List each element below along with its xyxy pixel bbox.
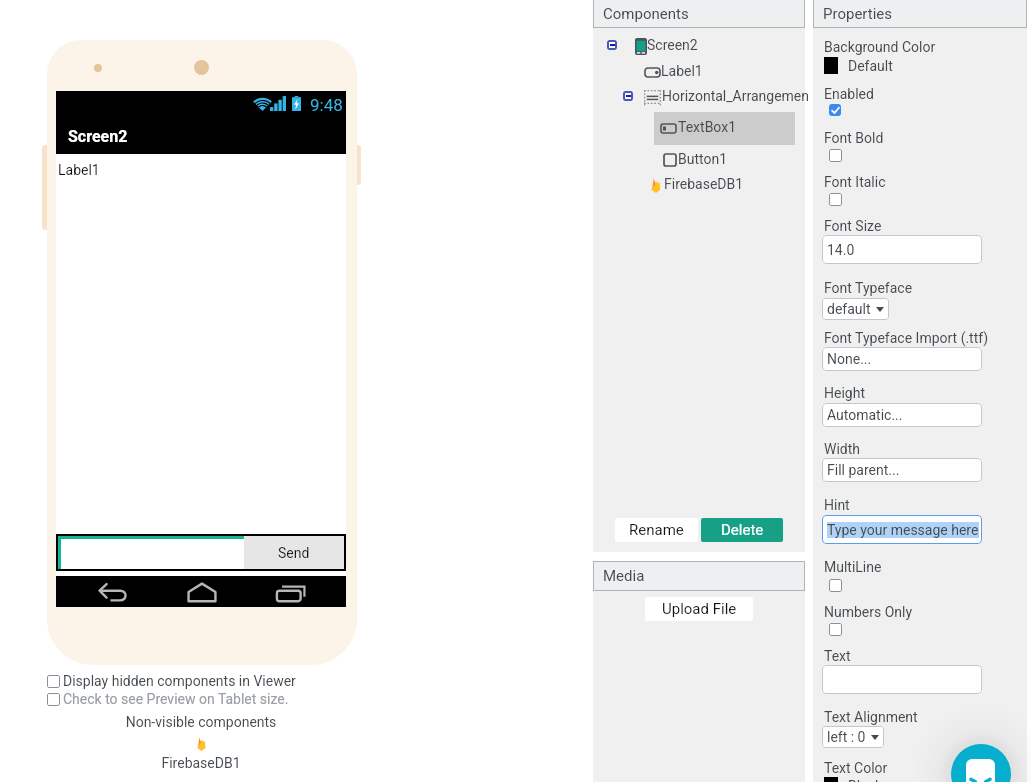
staticText: Media	[603, 567, 645, 585]
staticText: Screen2	[647, 37, 698, 53]
staticText: Screen2	[68, 127, 128, 146]
staticText: Rename	[629, 521, 684, 539]
button[interactable]: Home	[186, 581, 218, 603]
staticText: Properties	[823, 5, 893, 23]
button[interactable]: Automatic...	[822, 403, 982, 427]
staticText: 14.0	[827, 242, 855, 258]
staticText: Display hidden components in Viewer	[63, 673, 296, 689]
button[interactable]: Unchecked checkbox	[47, 675, 60, 688]
staticText: Black	[848, 778, 883, 782]
staticText: FirebaseDB1	[664, 176, 744, 192]
staticText: Font Bold	[824, 130, 884, 146]
staticText: Default	[848, 58, 893, 74]
button[interactable]: Unchecked checkbox	[829, 149, 842, 162]
staticText: Upload File	[662, 600, 737, 618]
staticText: Font Italic	[824, 174, 886, 190]
staticText: Non-visible components	[51, 714, 351, 730]
button[interactable]: Recents	[275, 581, 307, 603]
button[interactable]: Back	[97, 581, 129, 603]
button[interactable]: Delete	[701, 518, 783, 542]
button[interactable]: Unchecked checkbox	[829, 579, 842, 592]
staticText: Fill parent...	[827, 462, 900, 478]
staticText: Send	[278, 545, 310, 561]
staticText: Label1	[58, 162, 100, 178]
staticText: Button1	[678, 151, 728, 167]
button[interactable]: Collapse node	[623, 91, 633, 101]
staticText: 9:48	[310, 95, 343, 115]
button[interactable]	[640, 173, 805, 198]
staticText: Font Typeface	[824, 280, 913, 296]
button[interactable]: Type your message here	[822, 515, 982, 544]
button[interactable]: Collapse node	[607, 40, 617, 50]
button[interactable]: Open chat	[951, 744, 1011, 782]
staticText: Height	[824, 385, 865, 401]
button[interactable]: Enabled checkbox	[829, 104, 841, 116]
button[interactable]: Unchecked checkbox	[47, 691, 289, 707]
button[interactable]: Unchecked checkbox	[47, 673, 296, 689]
button[interactable]: 14.0	[822, 235, 982, 264]
button[interactable]: Send	[244, 536, 344, 569]
staticText: Background Color	[824, 39, 936, 55]
button[interactable]	[637, 85, 805, 110]
button[interactable]	[637, 60, 805, 85]
button[interactable]: Default	[824, 57, 893, 74]
button[interactable]	[653, 116, 805, 141]
staticText: Label1	[661, 63, 703, 79]
button[interactable]: left : 0	[822, 726, 884, 748]
staticText: Numbers Only	[824, 604, 913, 620]
button[interactable]	[654, 148, 805, 173]
button[interactable]	[822, 665, 982, 694]
button[interactable]: Unchecked checkbox	[47, 693, 60, 706]
staticText: Enabled	[824, 86, 874, 102]
button[interactable]: Upload File	[645, 597, 753, 621]
button[interactable]: None...	[822, 347, 982, 371]
staticText: Font Size	[824, 218, 882, 234]
staticText: Font Typeface Import (.ttf)	[824, 330, 989, 346]
staticText: Type your message here	[827, 522, 979, 538]
staticText: FirebaseDB1	[51, 755, 351, 771]
button[interactable]: Unchecked checkbox	[829, 623, 842, 636]
button[interactable]: Unchecked checkbox	[829, 193, 842, 206]
staticText: left : 0	[827, 729, 866, 745]
staticText: Check to see Preview on Tablet size.	[63, 691, 289, 707]
staticText: Text Color	[824, 760, 888, 776]
button[interactable]: Black	[824, 777, 883, 782]
staticText: Width	[824, 441, 861, 457]
button[interactable]: Rename	[615, 518, 698, 542]
staticText: Components	[603, 5, 689, 23]
staticText: Horizontal_Arrangemen	[662, 88, 809, 104]
staticText: None...	[827, 351, 872, 367]
staticText: MultiLine	[824, 559, 882, 575]
staticText: Delete	[721, 521, 764, 539]
staticText: Text Alignment	[824, 709, 918, 725]
staticText: Automatic...	[827, 407, 903, 423]
staticText: default	[827, 301, 871, 317]
staticText: Text	[824, 648, 851, 664]
button[interactable]	[625, 34, 805, 59]
staticText: Hint	[824, 497, 850, 513]
button[interactable]: default	[822, 298, 889, 320]
button[interactable]	[58, 536, 244, 569]
staticText: TextBox1	[678, 119, 737, 135]
button[interactable]: Fill parent...	[822, 458, 982, 482]
